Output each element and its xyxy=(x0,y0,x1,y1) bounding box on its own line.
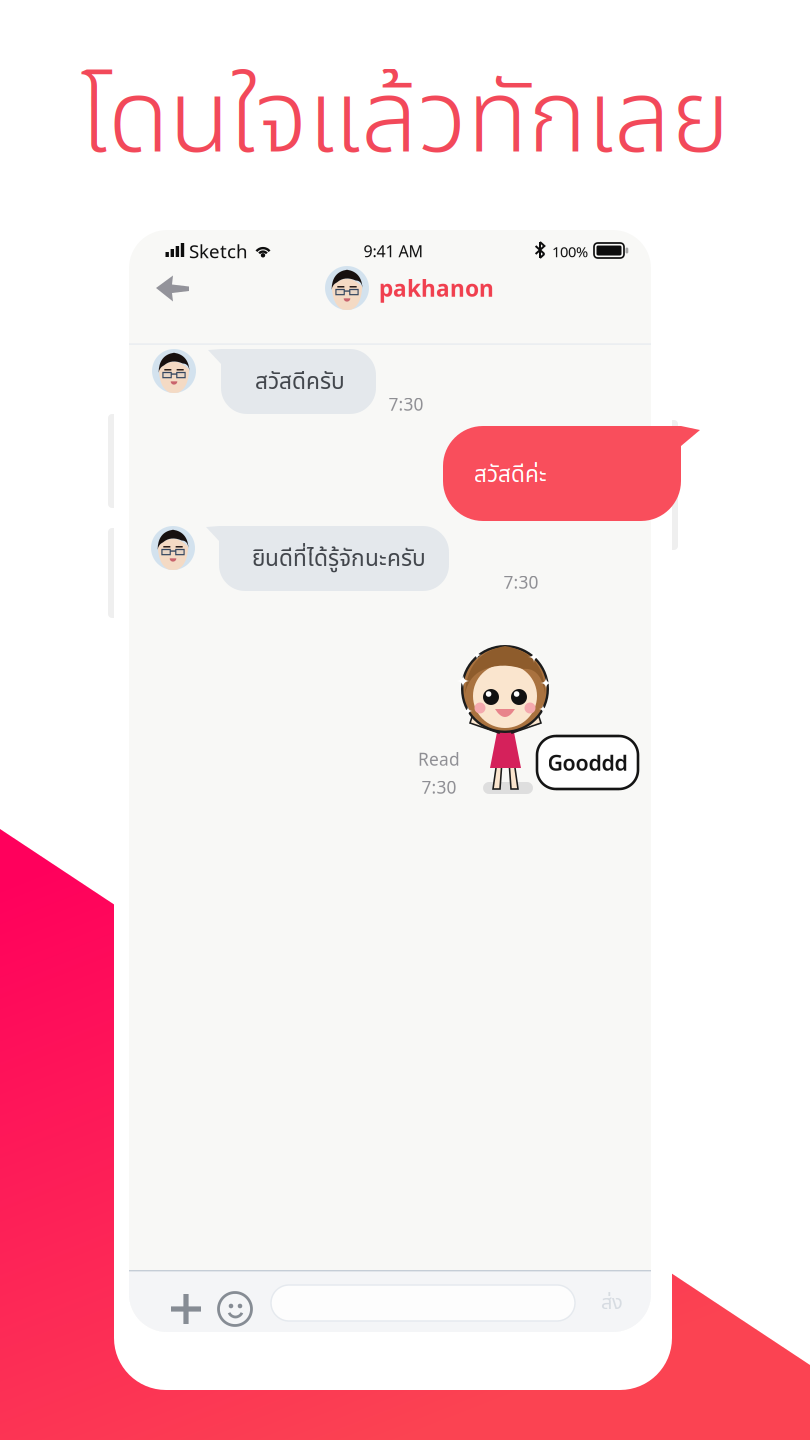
staticText: 9:41 AM xyxy=(363,240,423,262)
button[interactable]: Add attachment xyxy=(164,1287,208,1331)
staticText: 7:30 xyxy=(421,775,456,798)
staticText: 100% xyxy=(552,242,588,261)
button[interactable]: Emoji xyxy=(213,1287,257,1331)
button[interactable]: Message field xyxy=(271,1285,575,1321)
staticText: โดนใจแล้วทักเลย xyxy=(80,45,730,197)
staticText: 7:30 xyxy=(503,570,538,593)
button[interactable]: ส่ง xyxy=(601,1288,623,1318)
staticText: 7:30 xyxy=(388,392,423,415)
staticText: สวัสดีครับ xyxy=(255,365,345,399)
staticText: Gooddd xyxy=(547,748,627,777)
staticText: pakhanon xyxy=(379,273,494,303)
staticText: Read xyxy=(418,747,460,770)
staticText: ยินดีที่ได้รู้จักนะครับ xyxy=(252,542,426,576)
staticText: สวัสดีค่ะ xyxy=(474,458,547,492)
button[interactable]: Back xyxy=(146,266,202,310)
staticText: Sketch xyxy=(189,239,248,263)
staticText: ส่ง xyxy=(601,1288,623,1318)
